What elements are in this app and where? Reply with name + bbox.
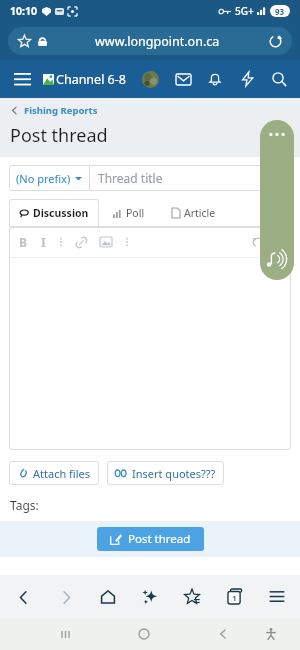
button[interactable]: Tabs (216, 578, 254, 616)
staticText: Discussion (33, 206, 89, 220)
button[interactable]: Insert image (100, 237, 112, 247)
staticText: 10:10 (10, 4, 37, 18)
button[interactable]: Forward (47, 578, 85, 616)
button[interactable]: Bookmarks (173, 578, 211, 616)
button[interactable]: Link (76, 237, 87, 248)
button[interactable]: I (41, 234, 46, 250)
button[interactable]: Alerts (205, 69, 225, 89)
staticText: Channel 6-8 (56, 71, 126, 88)
staticText: Post thread (128, 531, 191, 547)
button[interactable]: Bookmark (8, 27, 292, 55)
button[interactable]: Post thread (97, 527, 204, 551)
staticText: Article (184, 206, 216, 220)
button[interactable]: Menu (11, 68, 33, 90)
button[interactable]: What's new (237, 69, 257, 89)
other: Reload (269, 35, 282, 48)
button[interactable]: Accessibility (256, 619, 286, 649)
button[interactable]: Undo (252, 236, 264, 248)
staticText: 5G+ (235, 4, 254, 18)
button[interactable]: Account (142, 71, 159, 88)
button[interactable]: Fishing Reports (10, 104, 300, 117)
staticText: 1 (232, 593, 237, 603)
staticText: 93 (275, 6, 285, 17)
button[interactable]: Insert quotes??? (107, 461, 224, 485)
button[interactable]: Poll (99, 199, 159, 227)
staticText: Attach files (33, 466, 91, 481)
button[interactable]: Discussion (9, 199, 99, 227)
other: Secure (38, 37, 47, 46)
button[interactable]: Article (159, 199, 229, 227)
button[interactable]: (No prefix) (9, 165, 89, 191)
button[interactable]: Inbox (173, 69, 193, 89)
button[interactable]: Recents (50, 619, 80, 649)
button[interactable]: Channel 6-8 (43, 71, 126, 88)
staticText: www.longpoint.on.ca (95, 33, 220, 50)
button[interactable]: B (19, 234, 27, 250)
button[interactable] (9, 258, 291, 450)
button[interactable]: Thread title (90, 165, 291, 191)
button[interactable]: Read aloud (260, 120, 294, 280)
staticText: Thread title (98, 170, 163, 186)
button[interactable]: Attach files (9, 461, 99, 485)
button[interactable]: Home (129, 619, 159, 649)
button[interactable]: Search (269, 69, 289, 89)
staticText: Fishing Reports (24, 104, 98, 117)
staticText: (No prefix) (16, 171, 71, 186)
button[interactable]: Back (4, 578, 42, 616)
staticText: Tags: (10, 497, 39, 513)
staticText: Insert quotes??? (132, 466, 216, 481)
button[interactable]: More (59, 236, 63, 248)
button[interactable]: AI assistant (131, 578, 169, 616)
other: Bookmark (18, 35, 31, 48)
button[interactable]: Menu (258, 578, 296, 616)
button[interactable]: Home (89, 578, 127, 616)
button[interactable]: More (125, 236, 129, 248)
staticText: Post thread (10, 123, 108, 148)
staticText: Poll (126, 206, 145, 220)
button[interactable]: Back (208, 619, 238, 649)
